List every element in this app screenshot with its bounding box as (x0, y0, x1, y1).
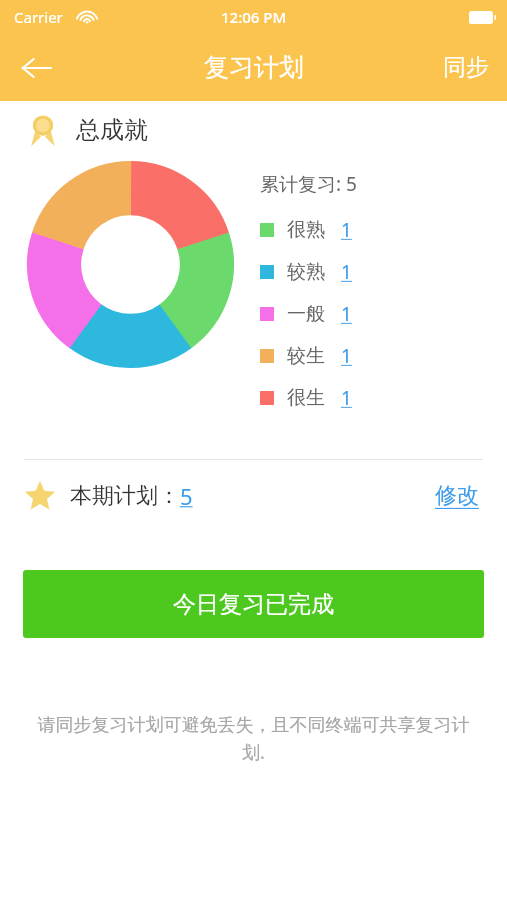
staticText: 12:06 PM (221, 7, 287, 27)
button[interactable]: 5 (180, 481, 193, 511)
button[interactable]: 修改 (431, 478, 483, 514)
staticText: 今日复习已完成 (173, 590, 334, 619)
staticText: 1 (341, 343, 352, 369)
button[interactable]: Back (8, 44, 64, 92)
button[interactable]: 今日复习已完成 (23, 570, 484, 638)
staticText: 同步 (443, 53, 489, 82)
staticText: 很生 (287, 386, 325, 410)
staticText: Carrier (14, 7, 63, 27)
staticText: 累计复习: 5 (260, 171, 357, 197)
staticText: 总成就 (76, 115, 148, 145)
button[interactable]: 同步 (439, 45, 493, 90)
staticText: 复习计划 (204, 52, 304, 83)
staticText: 1 (341, 385, 352, 411)
staticText: 一般 (287, 302, 325, 326)
staticText: 1 (341, 259, 352, 285)
staticText: 较熟 (287, 260, 325, 284)
button[interactable]: 很生 (260, 377, 507, 419)
button[interactable]: 一般 (260, 293, 507, 335)
staticText: 修改 (435, 482, 479, 510)
staticText: 本期计划： (70, 482, 180, 510)
button[interactable]: 较生 (260, 335, 507, 377)
staticText: 1 (341, 301, 352, 327)
staticText: 较生 (287, 344, 325, 368)
staticText: 很熟 (287, 218, 325, 242)
button[interactable]: 很熟 (260, 209, 507, 251)
staticText: 请同步复习计划可避免丢失，且不同终端可共享复习计划. (30, 714, 477, 765)
staticText: 1 (341, 217, 352, 243)
button[interactable]: 较熟 (260, 251, 507, 293)
